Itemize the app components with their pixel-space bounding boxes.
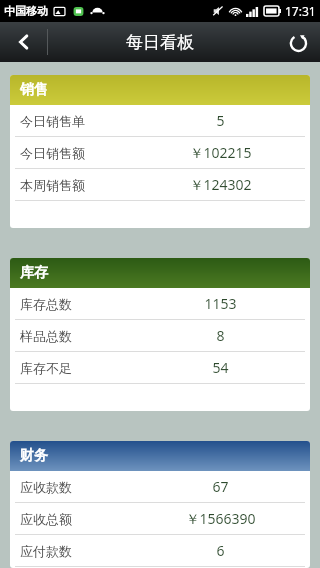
button[interactable]: Back	[0, 22, 47, 62]
staticText: 销售	[20, 81, 48, 99]
staticText: 应付款数	[20, 543, 72, 559]
button[interactable]: 应收总额	[10, 503, 310, 534]
staticText: 17:31	[285, 3, 316, 19]
button[interactable]: 应付款数	[10, 535, 310, 566]
button[interactable]: Refresh	[276, 22, 320, 62]
staticText: 54	[212, 358, 229, 377]
button[interactable]: 库存	[10, 258, 310, 411]
staticText: 库存	[20, 264, 48, 282]
staticText: 库存总数	[20, 296, 72, 312]
staticText: 应收款数	[20, 479, 72, 495]
button[interactable]: 库存不足	[10, 352, 310, 383]
button[interactable]: 财务	[10, 441, 310, 568]
staticText: 8	[216, 326, 225, 345]
staticText: 5	[216, 111, 225, 130]
staticText: 每日看板	[126, 32, 194, 53]
button[interactable]: 库存总数	[10, 288, 310, 319]
staticText: ￥1566390	[185, 509, 256, 528]
button[interactable]: 今日销售单	[10, 105, 310, 136]
staticText: 库存不足	[20, 360, 72, 376]
button[interactable]: 应收款数	[10, 471, 310, 502]
button[interactable]: 销售	[10, 75, 310, 228]
button[interactable]: 今日销售额	[10, 137, 310, 168]
staticText: 财务	[20, 447, 48, 465]
staticText: 67	[212, 477, 229, 496]
staticText: 今日销售单	[20, 113, 85, 129]
staticText: 应收总额	[20, 511, 72, 527]
staticText: 中国移动	[4, 4, 48, 18]
staticText: 本周销售额	[20, 177, 85, 193]
button[interactable]: 本周销售额	[10, 169, 310, 200]
staticText: 1153	[204, 294, 237, 313]
staticText: ￥124302	[189, 175, 252, 194]
button[interactable]: 样品总数	[10, 320, 310, 351]
staticText: 今日销售额	[20, 145, 85, 161]
staticText: 6	[216, 541, 225, 560]
staticText: ￥102215	[189, 143, 252, 162]
staticText: 样品总数	[20, 328, 72, 344]
